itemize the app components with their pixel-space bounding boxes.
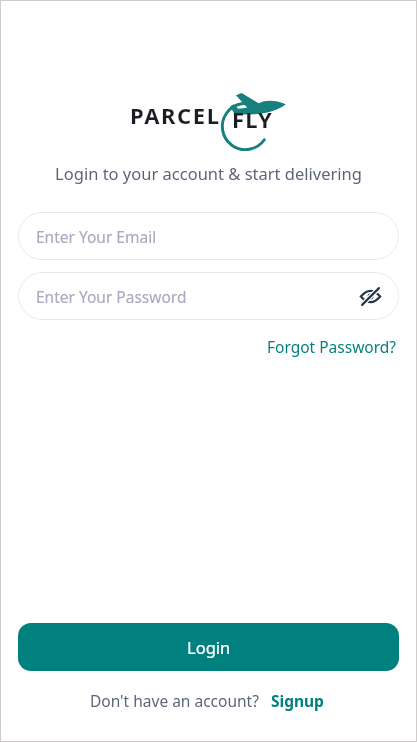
staticText: Signup <box>271 690 324 711</box>
button[interactable]: Show password <box>353 279 387 313</box>
staticText: PARCEL <box>130 100 221 130</box>
button[interactable]: Enter Your Password <box>18 272 399 320</box>
staticText: Enter Your Email <box>36 226 157 247</box>
staticText: Enter Your Password <box>36 286 187 307</box>
staticText: Don't have an account? <box>90 690 259 711</box>
button[interactable]: Signup <box>267 687 328 714</box>
staticText: FLY <box>232 104 274 134</box>
staticText: Login to your account & start delivering <box>18 162 399 184</box>
button[interactable]: Login <box>18 623 399 671</box>
button[interactable]: Enter Your Email <box>18 212 399 260</box>
button[interactable]: Forgot Password? <box>265 332 399 361</box>
staticText: Forgot Password? <box>267 336 397 357</box>
staticText: Login <box>187 636 231 658</box>
